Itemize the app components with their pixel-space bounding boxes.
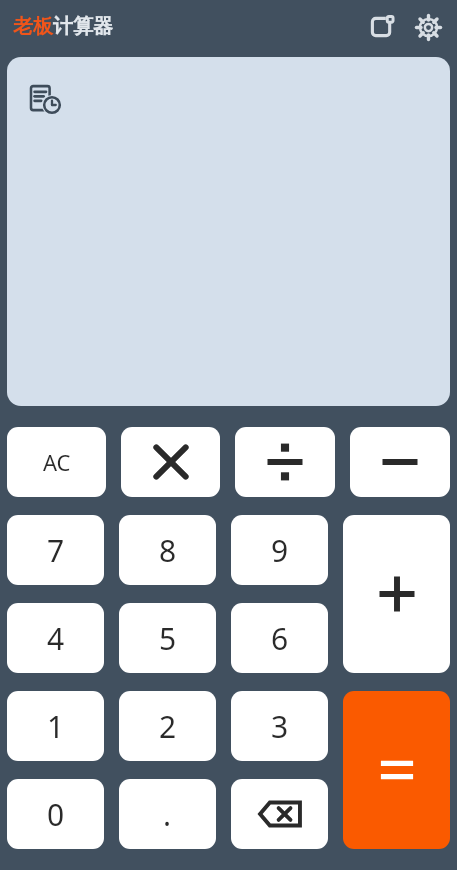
button[interactable]: 1 [7,691,104,761]
button[interactable]: 2 [119,691,216,761]
button[interactable]: 4 [7,603,104,673]
staticText: 1 [47,706,65,747]
button[interactable]: Multiply [121,427,220,497]
staticText: . [163,794,172,835]
staticText: 6 [271,618,289,659]
button[interactable]: AC [7,427,106,497]
staticText: 3 [271,706,289,747]
staticText: 8 [159,530,177,571]
button[interactable]: Plus [343,515,450,673]
button[interactable]: . [119,779,216,849]
button[interactable]: 5 [119,603,216,673]
button[interactable]: Floating window [359,4,405,50]
staticText: 5 [159,618,177,659]
button[interactable]: History [31,79,71,119]
button[interactable]: 7 [7,515,104,585]
button[interactable]: Equals [343,691,450,849]
staticText: 老板计算器 [13,14,113,39]
button[interactable]: Backspace [231,779,328,849]
staticText: 9 [271,530,289,571]
button[interactable]: Settings [405,4,451,50]
button[interactable]: 3 [231,691,328,761]
staticText: 2 [159,706,177,747]
button[interactable]: Divide [235,427,335,497]
staticText: 7 [47,530,65,571]
staticText: 0 [47,794,65,835]
button[interactable]: 8 [119,515,216,585]
button[interactable]: 0 [7,779,104,849]
button[interactable]: Minus [350,427,450,497]
button[interactable]: 9 [231,515,328,585]
staticText: 4 [47,618,65,659]
staticText: AC [43,447,71,477]
button[interactable]: 6 [231,603,328,673]
